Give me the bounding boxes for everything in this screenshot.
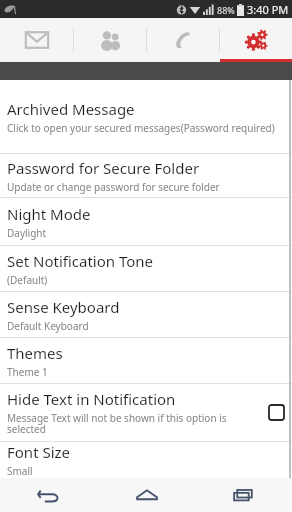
button[interactable]: Messages	[0, 18, 73, 62]
staticText: Update or change password for secure fol…	[7, 180, 220, 194]
button[interactable]: Archived Message	[0, 80, 292, 154]
staticText: Set Notification Tone	[7, 251, 154, 271]
staticText: (Default)	[7, 273, 48, 287]
staticText: Theme 1	[7, 365, 48, 379]
button[interactable]: Hide Text in Notification	[0, 384, 292, 442]
button[interactable]: Hide Text in Notification toggle	[269, 405, 284, 420]
button[interactable]: Themes	[0, 338, 292, 384]
staticText: Message Text will not be shown if this o…	[7, 411, 263, 436]
staticText: Default Keyboard	[7, 319, 89, 333]
staticText: Hide Text in Notification	[7, 389, 176, 409]
staticText: Archived Message	[7, 99, 135, 119]
staticText: Night Mode	[7, 204, 91, 224]
button[interactable]: Back	[0, 478, 98, 512]
staticText: Daylight	[7, 226, 47, 240]
staticText: Font Size	[7, 442, 71, 462]
staticText: Password for Secure Folder	[7, 158, 200, 178]
button[interactable]: Password for Secure Folder	[0, 154, 292, 198]
button[interactable]: Home	[98, 478, 195, 512]
button[interactable]: Contacts	[74, 18, 146, 62]
staticText: Sense Keyboard	[7, 297, 120, 317]
button[interactable]: Night Mode	[0, 198, 292, 246]
button[interactable]: Font Size	[0, 442, 292, 478]
button[interactable]: Calls	[147, 18, 219, 62]
staticText: Click to open your secured messages(Pass…	[7, 121, 275, 135]
staticText: Small	[7, 464, 33, 478]
button[interactable]: Set Notification Tone	[0, 246, 292, 292]
button[interactable]: Recents	[195, 478, 292, 512]
staticText: 3:40 PM	[247, 2, 289, 17]
button[interactable]: Settings	[220, 18, 292, 62]
staticText: Themes	[7, 343, 63, 363]
button[interactable]: Sense Keyboard	[0, 292, 292, 338]
staticText: 88%	[217, 4, 235, 16]
